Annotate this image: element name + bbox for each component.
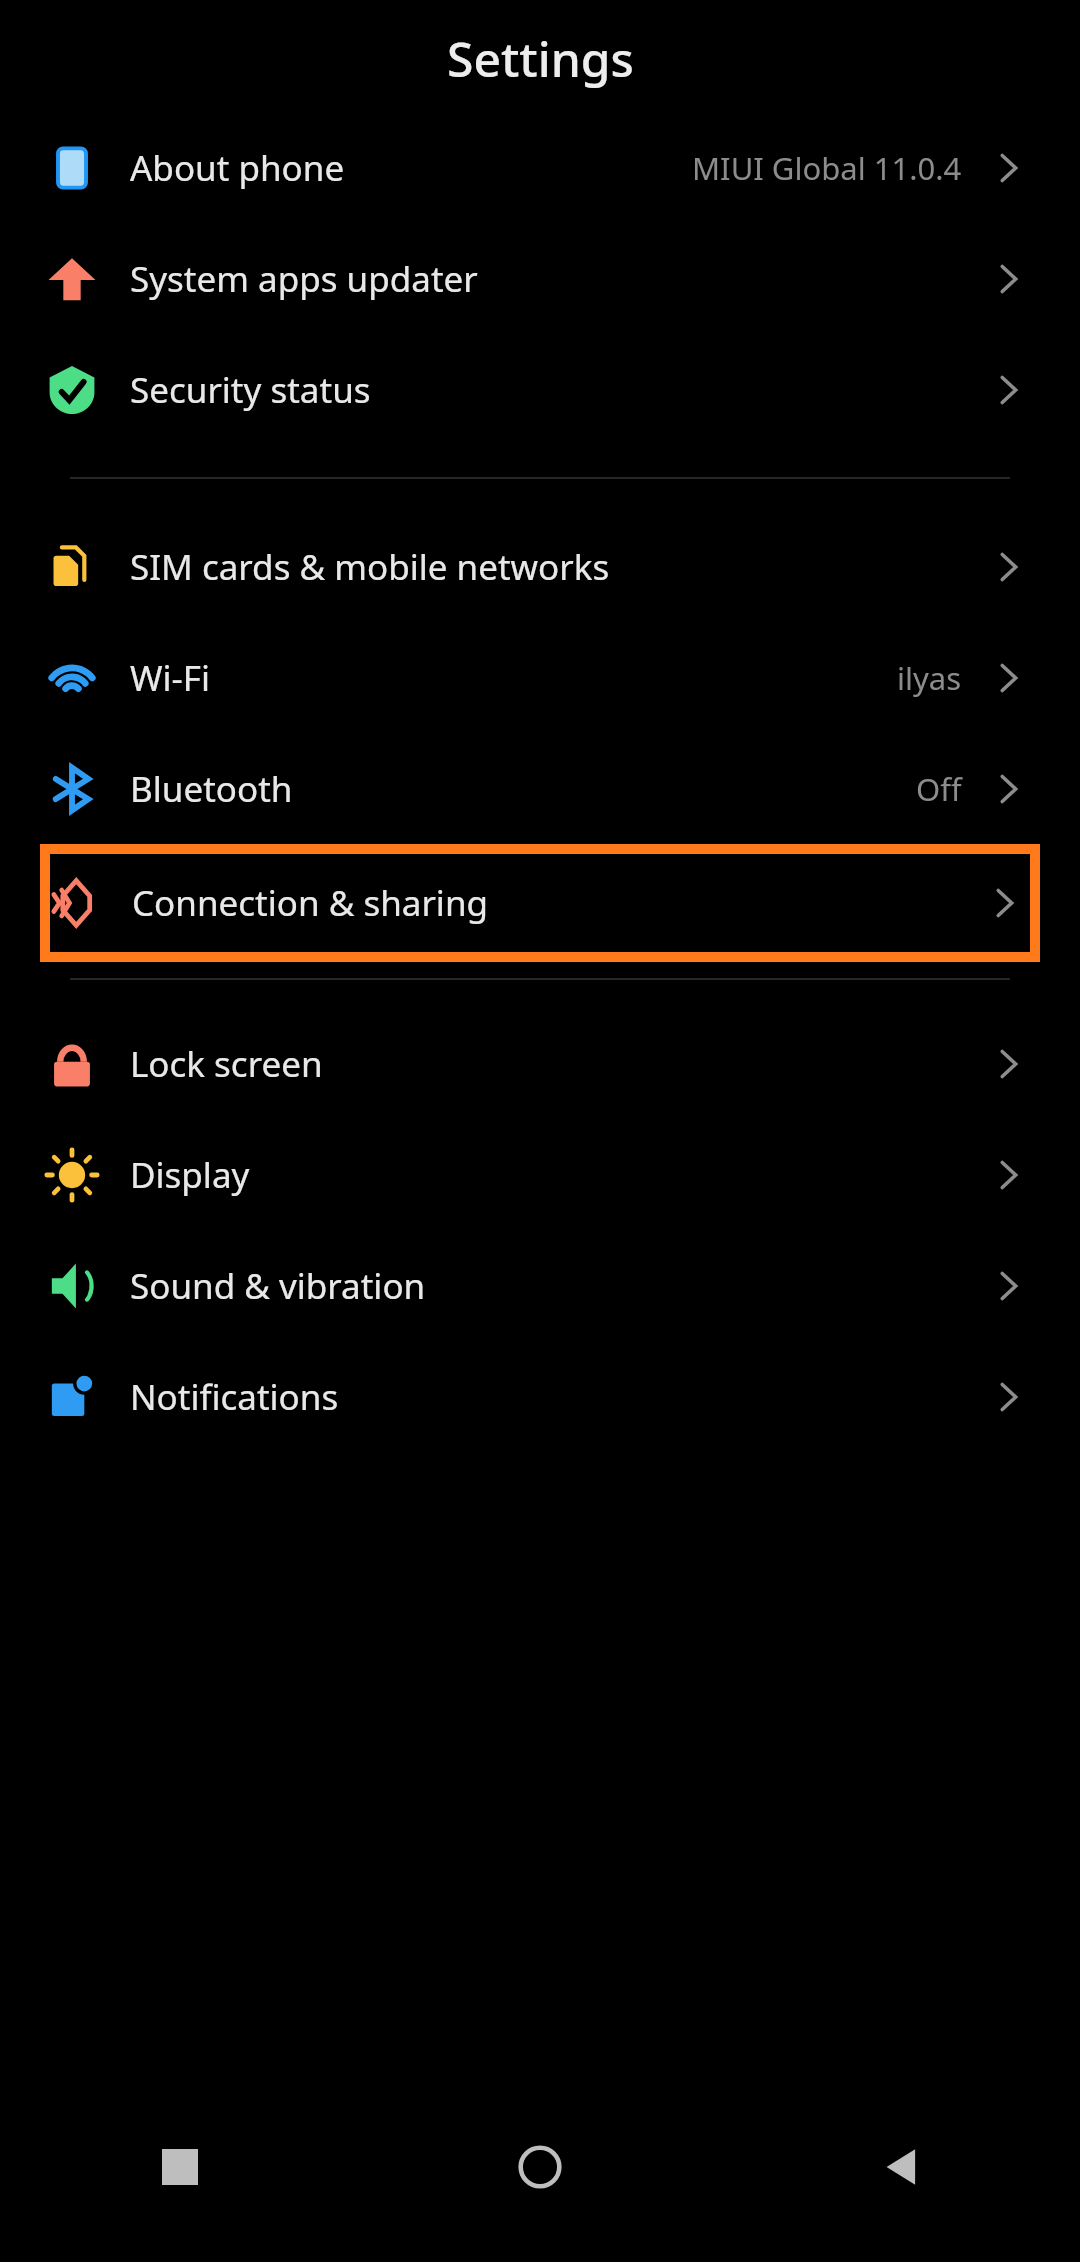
button[interactable]: Notifications xyxy=(0,1341,1080,1452)
staticText: MIUI Global 11.0.4 xyxy=(692,147,962,189)
button[interactable]: SIM cards & mobile networks xyxy=(0,511,1080,622)
staticText: SIM cards & mobile networks xyxy=(130,543,610,591)
staticText: Display xyxy=(130,1151,250,1199)
button[interactable]: Display xyxy=(0,1119,1080,1230)
staticText: Off xyxy=(916,768,962,810)
button[interactable]: Security status xyxy=(0,334,1080,445)
staticText: System apps updater xyxy=(130,255,478,303)
button[interactable]: Sound & vibration xyxy=(0,1230,1080,1341)
staticText: ilyas xyxy=(897,657,962,699)
staticText: Lock screen xyxy=(130,1040,323,1088)
staticText: Settings xyxy=(447,26,634,91)
button[interactable]: About phone xyxy=(0,112,1080,223)
button[interactable]: Connection & sharing xyxy=(40,844,1040,962)
staticText: About phone xyxy=(130,144,345,192)
button[interactable]: Back xyxy=(720,2112,1080,2222)
button[interactable]: System apps updater xyxy=(0,223,1080,334)
button[interactable]: Wi-Fi xyxy=(0,622,1080,733)
staticText: Connection & sharing xyxy=(132,879,489,927)
button[interactable]: Lock screen xyxy=(0,1008,1080,1119)
button[interactable]: Recent apps xyxy=(0,2112,360,2222)
staticText: Sound & vibration xyxy=(130,1262,426,1310)
staticText: Bluetooth xyxy=(130,765,293,813)
staticText: Wi-Fi xyxy=(130,654,211,702)
staticText: Notifications xyxy=(130,1373,339,1421)
staticText: Security status xyxy=(130,366,371,414)
button[interactable]: Bluetooth xyxy=(0,733,1080,844)
button[interactable]: Home xyxy=(360,2112,720,2222)
